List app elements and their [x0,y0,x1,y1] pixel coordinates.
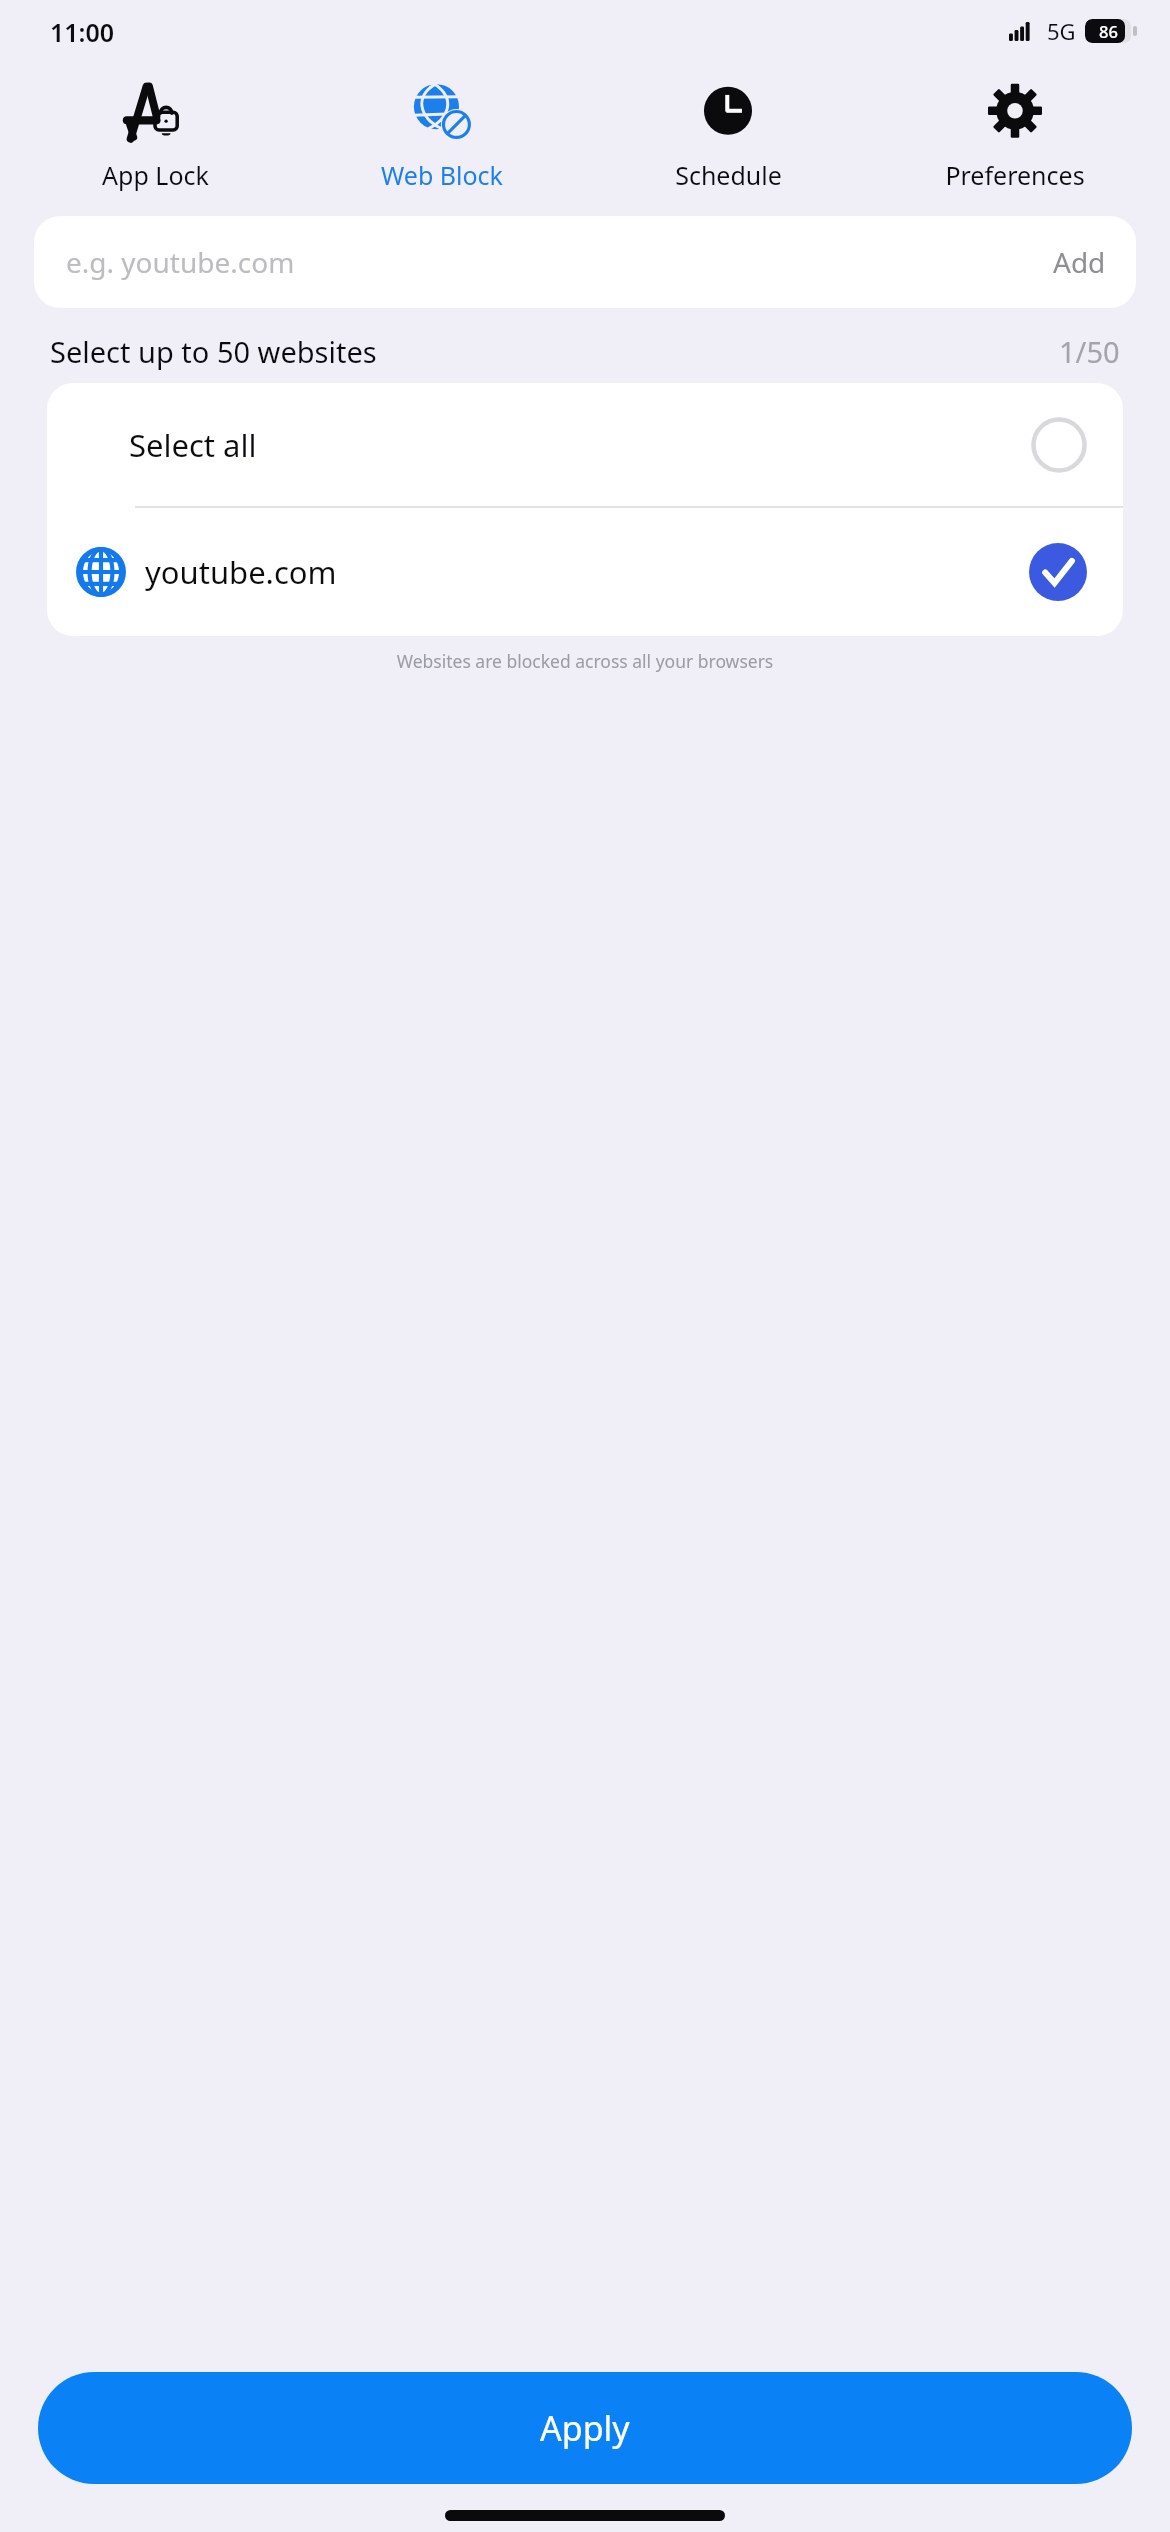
staticText: 86 [1099,20,1118,42]
staticText: Select up to 50 websites [50,332,377,371]
staticText: e.g. youtube.com [66,243,295,281]
button[interactable]: e.g. youtube.com [34,216,1136,308]
staticText: Add [1053,243,1106,281]
staticText: Preferences [945,158,1085,192]
button[interactable]: Web Block [302,74,582,194]
button[interactable]: Select all [47,383,1123,506]
staticText: Websites are blocked across all your bro… [0,649,1170,673]
button[interactable]: Schedule [588,74,868,194]
staticText: 1/50 [1059,332,1120,371]
staticText: 11:00 [50,15,115,49]
button[interactable]: Preferences [875,74,1155,194]
staticText: Select all [129,424,257,466]
staticText: youtube.com [145,551,337,593]
button[interactable]: Apply [38,2372,1132,2484]
staticText: App Lock [102,158,209,192]
staticText: Web Block [381,158,503,192]
button[interactable]: youtube.com [47,508,1123,636]
button[interactable]: App Lock [15,74,295,194]
staticText: Apply [540,2405,630,2451]
button[interactable]: Add [1023,229,1136,295]
staticText: Schedule [675,158,782,192]
staticText: 5G [1047,16,1076,46]
